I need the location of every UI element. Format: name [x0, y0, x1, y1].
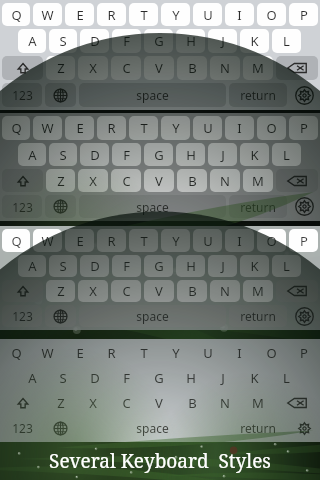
button[interactable]: B [177, 392, 207, 414]
button[interactable]: Change keyboard language [45, 195, 76, 218]
button[interactable]: G [144, 367, 173, 389]
button[interactable]: P [289, 116, 318, 140]
button[interactable]: R [97, 116, 126, 140]
button[interactable]: O [257, 116, 286, 140]
button[interactable]: L [272, 255, 301, 277]
button[interactable]: I [225, 3, 254, 26]
button[interactable]: I [225, 229, 254, 252]
button[interactable]: N [210, 169, 240, 192]
button[interactable]: Change keyboard language [45, 417, 76, 439]
button[interactable]: F [112, 367, 141, 389]
button[interactable]: D [80, 255, 109, 277]
button[interactable]: Z [46, 392, 75, 414]
button[interactable]: A [18, 29, 46, 53]
button[interactable]: L [272, 367, 301, 389]
button[interactable]: R [97, 342, 126, 364]
button[interactable]: Keyboard settings [290, 83, 318, 107]
button[interactable]: Y [161, 116, 190, 140]
button[interactable]: Delete [276, 169, 318, 192]
button[interactable]: Delete [276, 280, 318, 302]
button[interactable]: Y [161, 229, 190, 252]
button[interactable]: L [272, 29, 301, 53]
button[interactable]: C [111, 392, 141, 414]
button[interactable]: P [289, 342, 318, 364]
button[interactable]: Q [2, 116, 30, 140]
button[interactable]: P [289, 3, 318, 26]
button[interactable]: U [193, 116, 222, 140]
button[interactable]: S [49, 29, 77, 53]
button[interactable]: Keyboard settings [290, 195, 318, 218]
button[interactable]: S [49, 255, 77, 277]
button[interactable]: 123 [2, 83, 42, 107]
button[interactable]: O [257, 3, 286, 26]
button[interactable]: S [49, 367, 77, 389]
button[interactable]: D [80, 143, 109, 166]
button[interactable]: D [80, 367, 109, 389]
button[interactable]: K [240, 143, 269, 166]
button[interactable]: N [210, 56, 240, 80]
button[interactable]: space [79, 417, 226, 439]
button[interactable]: space [79, 195, 226, 218]
button[interactable]: C [111, 56, 141, 80]
button[interactable]: T [129, 229, 158, 252]
button[interactable]: return [229, 417, 287, 439]
button[interactable]: I [225, 342, 254, 364]
button[interactable]: Shift [2, 56, 43, 80]
button[interactable]: E [65, 3, 94, 26]
button[interactable]: Shift [2, 392, 43, 414]
button[interactable]: W [33, 116, 62, 140]
button[interactable]: V [144, 169, 174, 192]
button[interactable]: H [176, 255, 205, 277]
button[interactable]: H [176, 29, 205, 53]
button[interactable]: E [65, 116, 94, 140]
button[interactable]: M [243, 169, 273, 192]
button[interactable]: B [177, 169, 207, 192]
button[interactable]: H [176, 143, 205, 166]
button[interactable]: Z [46, 280, 75, 302]
button[interactable]: M [243, 392, 273, 414]
button[interactable]: X [78, 392, 108, 414]
button[interactable]: G [144, 143, 173, 166]
button[interactable]: G [144, 255, 173, 277]
button[interactable]: Delete [276, 56, 318, 80]
button[interactable]: E [65, 229, 94, 252]
button[interactable]: Keyboard settings [290, 417, 318, 439]
button[interactable]: K [240, 367, 269, 389]
button[interactable]: Q [2, 342, 30, 364]
button[interactable]: Q [2, 3, 30, 26]
button[interactable]: J [208, 143, 237, 166]
button[interactable]: U [193, 229, 222, 252]
button[interactable]: A [18, 143, 46, 166]
button[interactable]: C [111, 169, 141, 192]
button[interactable]: M [243, 56, 273, 80]
button[interactable]: M [243, 280, 273, 302]
button[interactable]: G [144, 29, 173, 53]
button[interactable]: I [225, 116, 254, 140]
button[interactable]: K [240, 255, 269, 277]
button[interactable]: N [210, 392, 240, 414]
button[interactable]: return [229, 83, 287, 107]
button[interactable]: J [208, 255, 237, 277]
button[interactable]: Delete [276, 392, 318, 414]
button[interactable]: Q [2, 229, 30, 252]
button[interactable]: A [18, 367, 46, 389]
button[interactable]: Z [46, 169, 75, 192]
button[interactable]: return [229, 195, 287, 218]
button[interactable]: T [129, 116, 158, 140]
button[interactable]: C [111, 280, 141, 302]
button[interactable]: Shift [2, 280, 43, 302]
button[interactable]: R [97, 229, 126, 252]
button[interactable]: W [33, 342, 62, 364]
button[interactable]: 123 [2, 417, 42, 439]
button[interactable]: Z [46, 56, 75, 80]
button[interactable]: V [144, 392, 174, 414]
button[interactable]: W [33, 3, 62, 26]
button[interactable]: Change keyboard language [45, 305, 76, 327]
button[interactable]: B [177, 280, 207, 302]
button[interactable]: L [272, 143, 301, 166]
button[interactable]: return [229, 305, 287, 327]
button[interactable]: O [257, 229, 286, 252]
button[interactable]: D [80, 29, 109, 53]
button[interactable]: T [129, 3, 158, 26]
button[interactable]: R [97, 3, 126, 26]
